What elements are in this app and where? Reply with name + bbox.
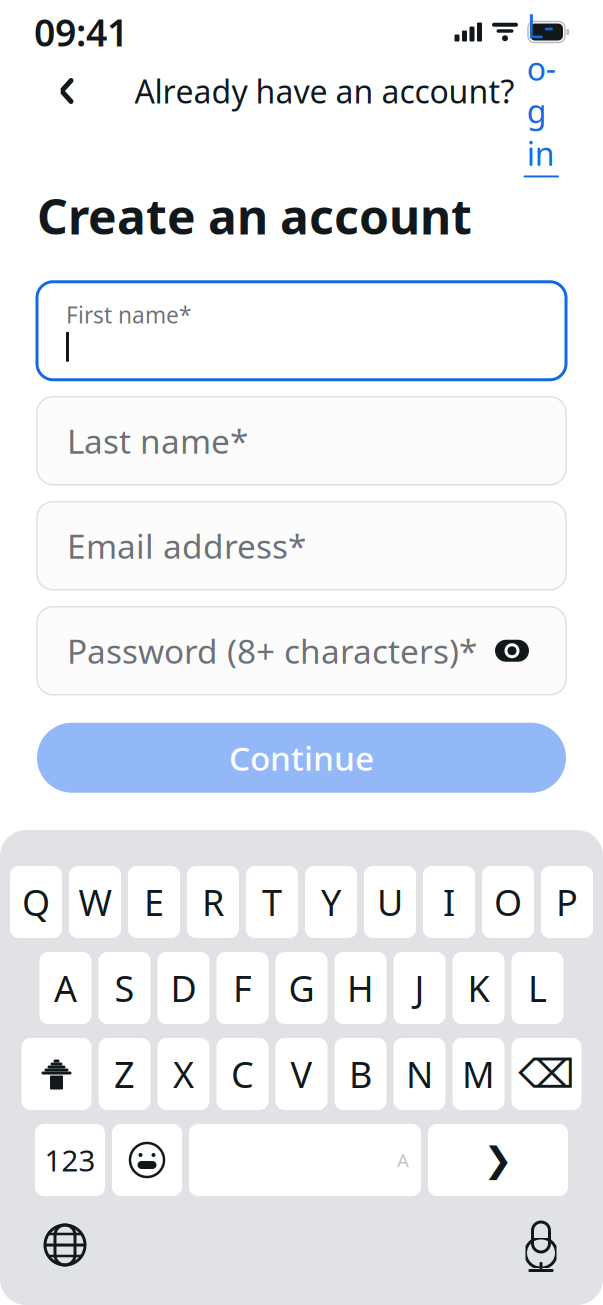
button[interactable]: K <box>452 952 504 1024</box>
button[interactable]: D <box>157 952 209 1024</box>
staticText: B <box>349 1050 372 1098</box>
button[interactable]: Shift <box>21 1038 91 1110</box>
staticText: 09:41 <box>34 7 128 57</box>
button[interactable]: Delete <box>511 1038 581 1110</box>
button[interactable]: M <box>452 1038 504 1110</box>
button[interactable]: Y <box>305 866 357 938</box>
button[interactable]: A <box>39 952 91 1024</box>
staticText: V <box>290 1050 312 1098</box>
button[interactable]: Q <box>10 866 62 938</box>
staticText: C <box>231 1050 254 1098</box>
button[interactable]: U <box>364 866 416 938</box>
button[interactable]: Log in <box>514 4 559 177</box>
button[interactable]: S <box>98 952 150 1024</box>
button[interactable]: Next keyboard <box>42 1222 88 1268</box>
staticText: Already have an account? <box>134 70 514 112</box>
staticText: X <box>173 1050 194 1098</box>
button[interactable]: Back <box>44 66 90 116</box>
staticText: F <box>233 964 252 1012</box>
button[interactable]: W <box>69 866 121 938</box>
staticText: K <box>467 964 489 1012</box>
staticText: M <box>462 1050 495 1098</box>
button[interactable]: Go <box>428 1124 568 1196</box>
button[interactable]: E <box>128 866 180 938</box>
button[interactable]: G <box>275 952 327 1024</box>
staticText: Z <box>114 1050 135 1098</box>
staticText: J <box>414 964 424 1012</box>
button[interactable]: O <box>482 866 534 938</box>
button[interactable]: R <box>187 866 239 938</box>
button[interactable]: Dictation <box>521 1218 561 1272</box>
staticText: L <box>528 964 547 1012</box>
button[interactable]: N <box>393 1038 445 1110</box>
staticText: D <box>170 964 196 1012</box>
staticText: 123 <box>44 1140 95 1179</box>
staticText: A <box>397 1148 409 1172</box>
button[interactable]: T <box>246 866 298 938</box>
staticText: H <box>347 964 374 1012</box>
button[interactable]: H <box>334 952 386 1024</box>
staticText: U <box>377 878 403 926</box>
staticText: Password (8+ characters)* <box>67 629 477 673</box>
staticText: P <box>556 878 578 926</box>
button[interactable]: V <box>275 1038 327 1110</box>
button[interactable]: L <box>511 952 563 1024</box>
staticText: W <box>78 878 111 926</box>
staticText: I <box>443 878 455 926</box>
button[interactable]: X <box>157 1038 209 1110</box>
staticText: Log in <box>527 4 556 174</box>
staticText: ❯ <box>483 1140 512 1180</box>
staticText: T <box>262 878 282 926</box>
staticText: A <box>54 964 77 1012</box>
staticText: Y <box>321 878 341 926</box>
staticText: N <box>406 1050 433 1098</box>
button[interactable]: 123 <box>35 1124 105 1196</box>
staticText: Email address* <box>67 524 306 568</box>
button[interactable]: Z <box>98 1038 150 1110</box>
staticText: Last name* <box>67 419 248 463</box>
staticText: Q <box>22 878 50 926</box>
staticText: O <box>494 878 522 926</box>
button[interactable]: B <box>334 1038 386 1110</box>
staticText: E <box>144 878 164 926</box>
staticText: Create an account <box>37 184 472 248</box>
button[interactable]: Continue <box>37 723 566 793</box>
button[interactable]: Emoji <box>112 1124 182 1196</box>
button[interactable]: I <box>423 866 475 938</box>
staticText: ⌫ <box>518 1051 575 1097</box>
staticText: First name* <box>66 300 191 330</box>
button[interactable]: J <box>393 952 445 1024</box>
staticText: R <box>202 878 224 926</box>
staticText: G <box>288 964 314 1012</box>
button[interactable]: Show password <box>488 633 536 669</box>
staticText: Continue <box>229 736 374 780</box>
button[interactable]: Space <box>189 1124 421 1196</box>
button[interactable]: F <box>216 952 268 1024</box>
staticText: S <box>114 964 134 1012</box>
button[interactable]: C <box>216 1038 268 1110</box>
button[interactable]: P <box>541 866 593 938</box>
